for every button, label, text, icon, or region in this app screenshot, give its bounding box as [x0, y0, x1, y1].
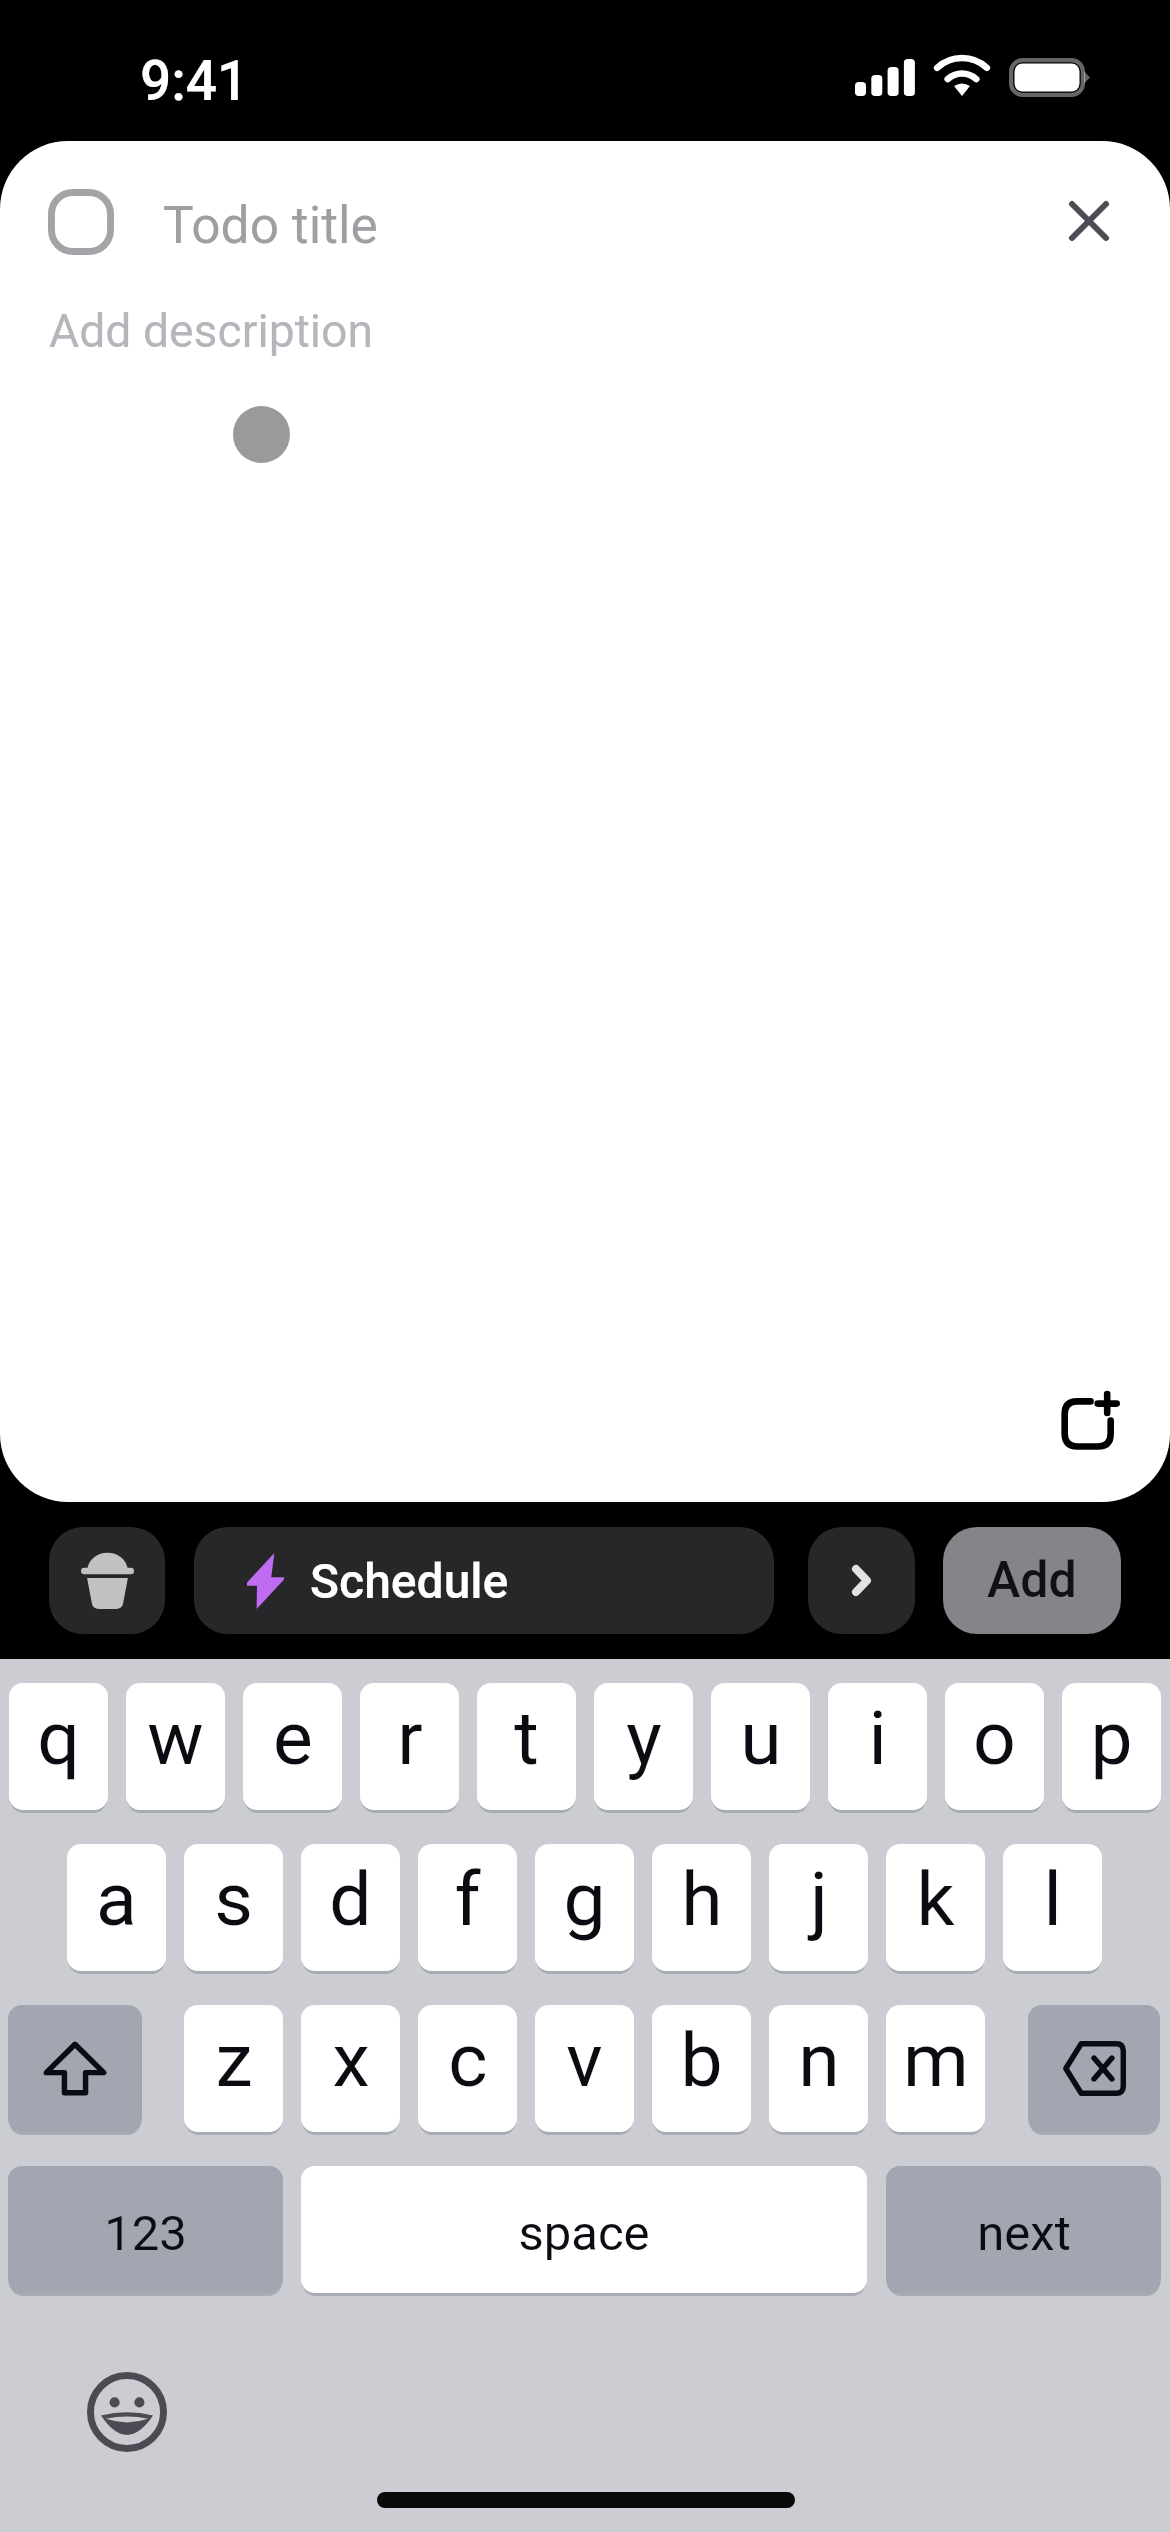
button[interactable]: 123: [8, 2166, 283, 2293]
button[interactable]: Backspace: [1028, 2005, 1160, 2132]
button[interactable]: o: [945, 1683, 1044, 1810]
button[interactable]: n: [769, 2005, 868, 2132]
button[interactable]: t: [477, 1683, 576, 1810]
staticText: space: [518, 2205, 650, 2262]
button[interactable]: w: [126, 1683, 225, 1810]
button[interactable]: l: [1003, 1844, 1102, 1971]
staticText: t: [514, 1694, 539, 1782]
button[interactable]: b: [652, 2005, 751, 2132]
staticText: e: [273, 1694, 313, 1782]
button[interactable]: y: [594, 1683, 693, 1810]
staticText: h: [681, 1855, 723, 1943]
staticText: w: [147, 1694, 204, 1782]
button[interactable]: p: [1062, 1683, 1161, 1810]
button[interactable]: Add: [943, 1527, 1121, 1634]
button[interactable]: j: [769, 1844, 868, 1971]
staticText: v: [566, 2016, 603, 2104]
button[interactable]: v: [535, 2005, 634, 2132]
button[interactable]: s: [184, 1844, 283, 1971]
button[interactable]: k: [886, 1844, 985, 1971]
button[interactable]: r: [360, 1683, 459, 1810]
button[interactable]: f: [418, 1844, 517, 1971]
button[interactable]: d: [301, 1844, 400, 1971]
staticText: Add description: [49, 304, 374, 358]
button[interactable]: Delete: [49, 1527, 165, 1634]
staticText: m: [903, 2016, 969, 2104]
staticText: 123: [104, 2205, 187, 2262]
button[interactable]: m: [886, 2005, 985, 2132]
staticText: Add: [987, 1551, 1077, 1610]
staticText: 9:41: [140, 49, 249, 113]
button[interactable]: a: [67, 1844, 166, 1971]
staticText: c: [448, 2016, 488, 2104]
button[interactable]: z: [184, 2005, 283, 2132]
button[interactable]: h: [652, 1844, 751, 1971]
staticText: o: [973, 1694, 1016, 1782]
staticText: p: [1090, 1694, 1133, 1782]
button[interactable]: Mark complete: [48, 189, 114, 255]
button[interactable]: More options: [808, 1527, 915, 1634]
staticText: q: [37, 1694, 80, 1782]
button[interactable]: c: [418, 2005, 517, 2132]
staticText: d: [329, 1855, 372, 1943]
staticText: f: [454, 1855, 481, 1943]
button[interactable]: Emoji keyboard: [87, 2372, 167, 2452]
staticText: n: [798, 2016, 840, 2104]
staticText: j: [810, 1855, 828, 1943]
button[interactable]: Schedule: [194, 1527, 774, 1634]
staticText: i: [868, 1694, 887, 1782]
staticText: s: [214, 1855, 253, 1943]
button[interactable]: g: [535, 1844, 634, 1971]
staticText: x: [332, 2016, 370, 2104]
staticText: g: [563, 1855, 606, 1943]
button[interactable]: q: [9, 1683, 108, 1810]
button[interactable]: space: [301, 2166, 867, 2293]
staticText: Schedule: [310, 1553, 509, 1609]
button[interactable]: i: [828, 1683, 927, 1810]
button[interactable]: x: [301, 2005, 400, 2132]
staticText: r: [397, 1694, 423, 1782]
staticText: l: [1043, 1855, 1062, 1943]
staticText: a: [96, 1855, 137, 1943]
button[interactable]: Shift: [8, 2005, 142, 2132]
button[interactable]: Close: [1055, 187, 1123, 255]
staticText: Todo title: [163, 195, 378, 255]
staticText: k: [916, 1855, 955, 1943]
staticText: z: [215, 2016, 253, 2104]
button[interactable]: Add subtask: [1059, 1391, 1122, 1454]
button[interactable]: u: [711, 1683, 810, 1810]
button[interactable]: e: [243, 1683, 342, 1810]
staticText: y: [626, 1694, 662, 1782]
button[interactable]: next: [886, 2166, 1161, 2293]
staticText: u: [740, 1694, 782, 1782]
staticText: b: [680, 2016, 723, 2104]
staticText: next: [977, 2205, 1071, 2262]
